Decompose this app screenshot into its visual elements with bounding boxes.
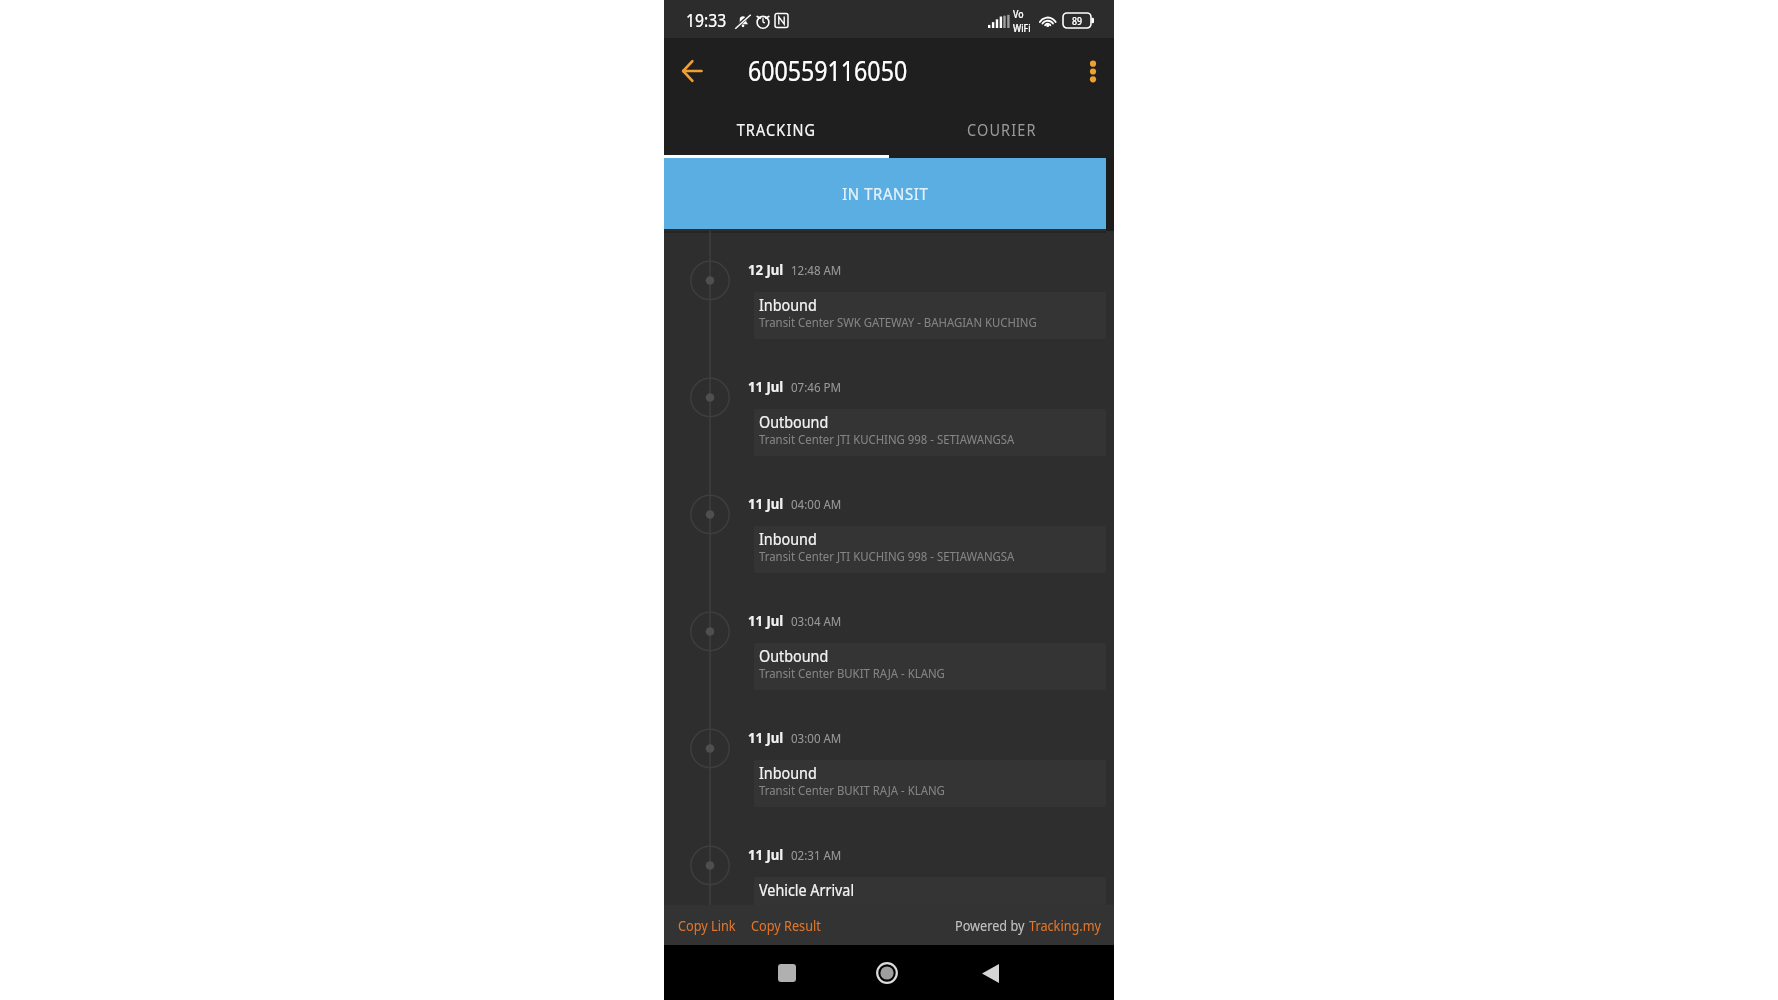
staticText: COURIER <box>967 118 1037 140</box>
staticText: 02:31 AM <box>791 846 842 864</box>
staticText: Tracking.my <box>1029 915 1102 935</box>
staticText: Transit Center JTI KUCHING 998 - SETIAWA… <box>759 547 1014 565</box>
staticText: 19:33 <box>686 8 727 33</box>
button[interactable]: Vehicle Arrival <box>754 877 1106 905</box>
staticText: 89 <box>1072 14 1082 28</box>
button[interactable]: Inbound <box>754 760 1106 807</box>
staticText: 11 Jul <box>748 610 784 630</box>
staticText: Vo <box>1013 7 1024 21</box>
button[interactable]: More options <box>1069 47 1117 95</box>
button[interactable]: Home <box>863 949 911 997</box>
button[interactable]: Recents <box>763 949 811 997</box>
staticText: Inbound <box>759 527 818 549</box>
staticText: Copy Result <box>751 915 821 935</box>
staticText: Powered by <box>955 915 1025 935</box>
button[interactable]: Inbound <box>754 526 1106 573</box>
staticText: Vehicle Arrival <box>759 878 854 900</box>
staticText: Inbound <box>759 293 818 315</box>
staticText: Copy Link <box>678 915 736 935</box>
staticText: 03:00 AM <box>791 729 842 747</box>
button[interactable]: Back <box>966 949 1014 997</box>
staticText: Transit Center BUKIT RAJA - KLANG <box>759 664 945 682</box>
staticText: Outbound <box>759 644 829 666</box>
staticText: Transit Center JTI KUCHING 998 - SETIAWA… <box>759 430 1014 448</box>
staticText: 04:00 AM <box>791 495 842 513</box>
staticText: 11 Jul <box>748 376 784 396</box>
button[interactable]: TRACKING <box>664 103 889 155</box>
staticText: 07:46 PM <box>791 378 842 396</box>
button[interactable]: Copy Result <box>751 910 831 940</box>
button[interactable]: Inbound <box>754 292 1106 339</box>
staticText: WiFi <box>1013 21 1031 35</box>
button[interactable]: Powered by <box>945 910 1112 940</box>
staticText: 03:04 AM <box>791 612 842 630</box>
staticText: 11 Jul <box>748 493 784 513</box>
staticText: 11 Jul <box>748 844 784 864</box>
button[interactable]: Copy Link <box>678 910 744 940</box>
staticText: Transit Center SWK GATEWAY - BAHAGIAN KU… <box>759 313 1037 331</box>
staticText: Inbound <box>759 761 818 783</box>
button[interactable]: Outbound <box>754 409 1106 456</box>
staticText: Outbound <box>759 410 829 432</box>
button[interactable]: COURIER <box>889 103 1114 155</box>
staticText: IN TRANSIT <box>842 182 929 205</box>
staticText: 600559116050 <box>748 53 907 89</box>
staticText: TRACKING <box>737 118 816 140</box>
button[interactable]: Back <box>664 43 720 99</box>
button[interactable]: Outbound <box>754 643 1106 690</box>
staticText: 11 Jul <box>748 727 784 747</box>
staticText: 12:48 AM <box>791 261 842 279</box>
staticText: 12 Jul <box>748 259 784 279</box>
staticText: Transit Center BUKIT RAJA - KLANG <box>759 781 945 799</box>
